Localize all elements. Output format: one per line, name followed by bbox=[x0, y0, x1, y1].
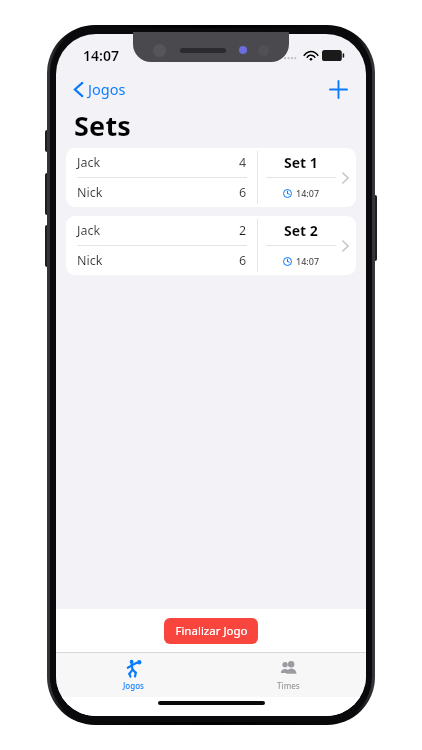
staticText: Set 2 bbox=[284, 221, 318, 240]
staticText: 4 bbox=[239, 154, 247, 171]
staticText: Finalizar Jogo bbox=[175, 623, 248, 639]
staticText: Nick bbox=[77, 252, 239, 269]
staticText: Jogos bbox=[123, 680, 144, 691]
staticText: 14:07 bbox=[296, 187, 320, 199]
staticText: Jack bbox=[77, 154, 239, 171]
button[interactable]: Jack bbox=[66, 148, 356, 207]
staticText: 14:07 bbox=[296, 255, 320, 267]
staticText: 14:07 bbox=[83, 46, 119, 65]
button[interactable]: Jogos bbox=[68, 75, 132, 103]
staticText: Times bbox=[277, 680, 300, 691]
staticText: Sets bbox=[74, 107, 132, 144]
button[interactable]: Times bbox=[211, 653, 366, 697]
staticText: Jack bbox=[77, 222, 239, 239]
button[interactable]: Add set bbox=[324, 75, 352, 103]
staticText: Nick bbox=[77, 184, 239, 201]
button[interactable]: Jogos bbox=[56, 653, 211, 697]
button[interactable]: Jack bbox=[66, 216, 356, 275]
staticText: 2 bbox=[239, 222, 247, 239]
staticText: 6 bbox=[239, 252, 247, 269]
staticText: 6 bbox=[239, 184, 247, 201]
staticText: Jogos bbox=[88, 79, 126, 99]
button[interactable]: Finalizar Jogo bbox=[164, 618, 258, 644]
staticText: Set 1 bbox=[284, 153, 318, 172]
